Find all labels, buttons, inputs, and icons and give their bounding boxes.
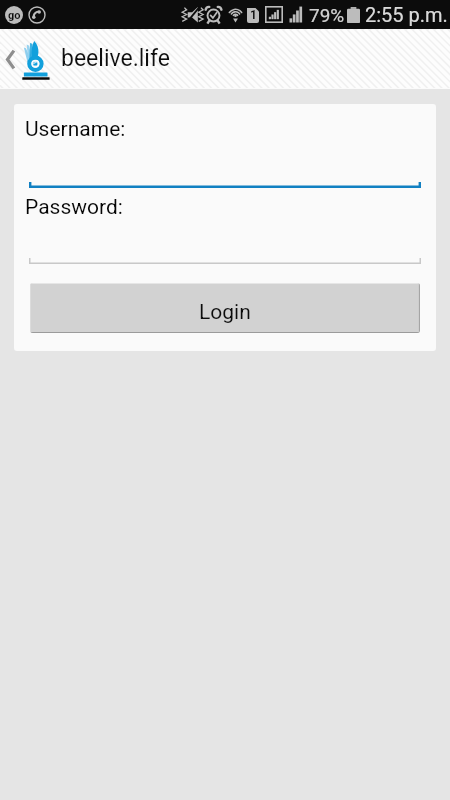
staticText: Login — [199, 300, 251, 325]
button[interactable]: Back — [0, 29, 21, 89]
staticText: Password: — [25, 195, 123, 220]
staticText: 2:55 p.m. — [365, 3, 448, 26]
staticText: 1 — [250, 8, 257, 22]
staticText: go — [8, 9, 21, 22]
button[interactable]: Login — [30, 283, 420, 333]
staticText: beelive.life — [61, 45, 170, 72]
staticText: 79% — [309, 4, 345, 26]
staticText: Username: — [25, 117, 126, 142]
